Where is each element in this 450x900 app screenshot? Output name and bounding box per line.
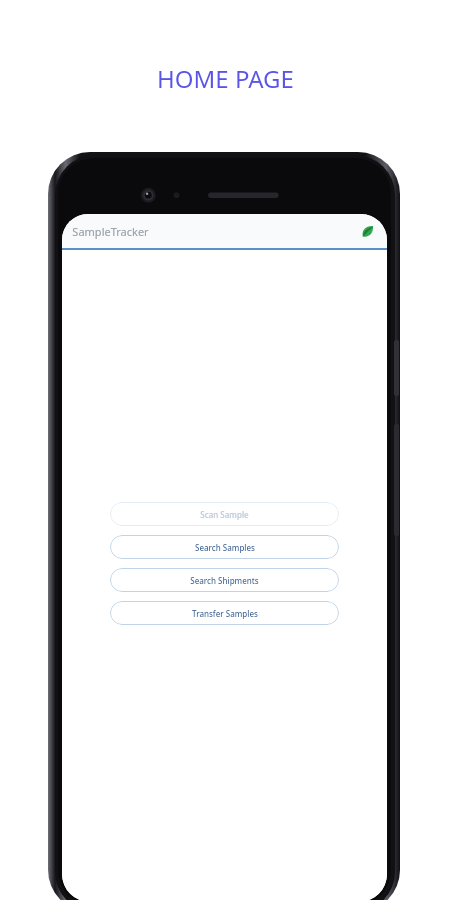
button[interactable]: Transfer Samples bbox=[110, 601, 339, 625]
button[interactable]: App logo bbox=[357, 221, 377, 241]
staticText: Search Shipments bbox=[190, 575, 259, 586]
staticText: Search Samples bbox=[195, 542, 255, 553]
staticText: Transfer Samples bbox=[192, 608, 258, 619]
staticText: HOME PAGE bbox=[157, 62, 294, 95]
button[interactable]: Search Shipments bbox=[110, 568, 339, 592]
staticText: SampleTracker bbox=[72, 224, 149, 239]
button[interactable]: Search Samples bbox=[110, 535, 339, 559]
staticText: Scan Sample bbox=[200, 509, 249, 520]
button[interactable]: Scan Sample bbox=[110, 502, 339, 526]
